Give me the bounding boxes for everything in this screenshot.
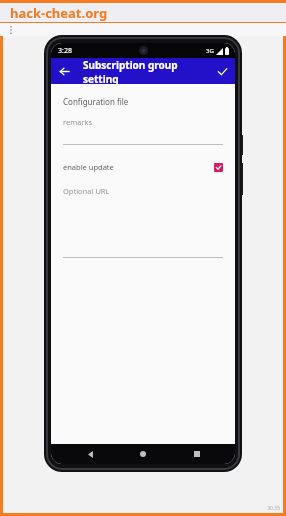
staticText: 3G — [206, 47, 214, 55]
staticText: 30.35 — [267, 505, 280, 512]
staticText: remarks — [63, 117, 93, 127]
button[interactable]: Save — [209, 58, 235, 84]
staticText: Configuration file — [63, 96, 129, 107]
staticText: enable update — [63, 162, 214, 172]
staticText: hack-cheat.org — [10, 4, 108, 22]
button[interactable]: Back — [51, 58, 77, 84]
button[interactable]: Home — [128, 444, 158, 464]
staticText: Optional URL — [63, 186, 110, 196]
button[interactable]: Recent apps — [182, 444, 212, 464]
staticText: 3:28 — [58, 46, 72, 56]
button[interactable]: Back — [75, 444, 105, 464]
button[interactable]: enable update — [63, 162, 223, 172]
staticText: Subscription group setting — [83, 58, 209, 84]
